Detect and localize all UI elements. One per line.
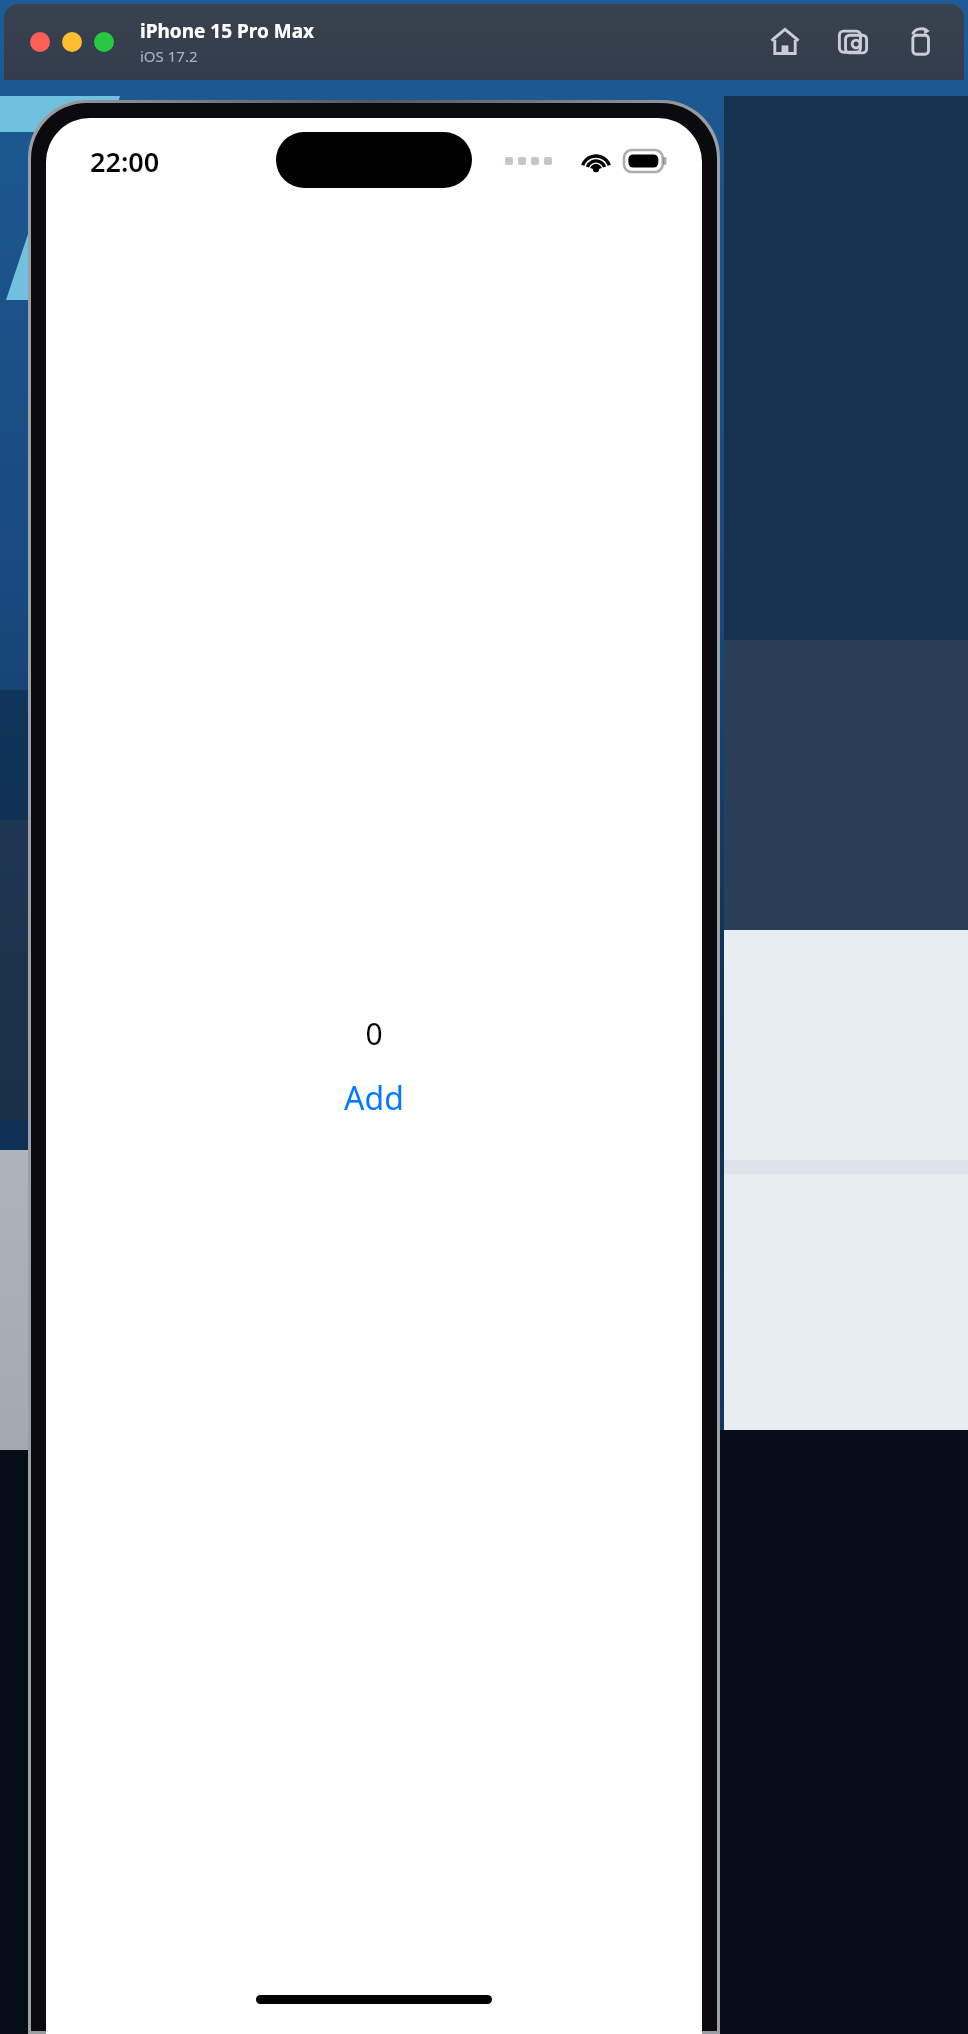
button[interactable]: Minimise xyxy=(62,32,82,52)
button[interactable]: Add xyxy=(344,1076,404,1120)
button[interactable]: Full screen xyxy=(94,32,114,52)
button[interactable]: Close xyxy=(30,32,50,52)
staticText: Add xyxy=(344,1076,404,1120)
staticText: iOS 17.2 xyxy=(140,46,198,66)
button[interactable]: Screenshot xyxy=(832,21,874,63)
button[interactable]: Home xyxy=(764,21,806,63)
staticText: 0 xyxy=(365,1013,383,1054)
staticText: 22:00 xyxy=(90,143,160,180)
button[interactable]: Rotate device xyxy=(900,21,942,63)
staticText: iPhone 15 Pro Max xyxy=(140,18,315,44)
